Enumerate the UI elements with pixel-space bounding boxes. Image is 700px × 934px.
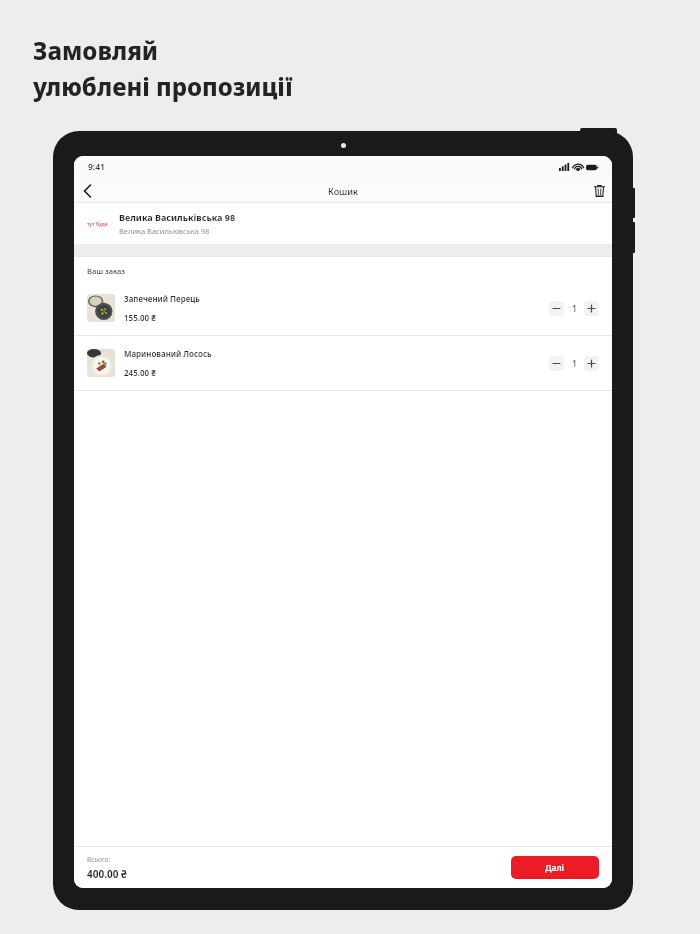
- staticText: Всього:: [87, 855, 111, 864]
- staticText: 9:41: [88, 161, 105, 173]
- button[interactable]: Increase quantity: [584, 356, 599, 371]
- staticText: Велика Васильківська 98: [119, 211, 236, 223]
- staticText: Велика Васильківська 98: [119, 226, 210, 236]
- staticText: Запечений Перець: [124, 293, 200, 304]
- button[interactable]: Decrease quantity: [549, 356, 564, 371]
- staticText: тут буде: [87, 220, 114, 227]
- staticText: 155.00 ₴: [124, 312, 156, 323]
- button[interactable]: Clear cart: [586, 178, 612, 203]
- button[interactable]: Далі: [511, 856, 599, 879]
- staticText: Ваш заказ: [87, 266, 125, 276]
- button[interactable]: тут буде: [74, 203, 612, 244]
- staticText: 1: [572, 303, 577, 314]
- staticText: 245.00 ₴: [124, 367, 156, 378]
- staticText: Мариновaний Лосось: [124, 348, 212, 359]
- staticText: улюблені пропозиції: [33, 70, 293, 103]
- button[interactable]: Decrease quantity: [549, 301, 564, 316]
- button[interactable]: Back: [74, 178, 100, 203]
- button[interactable]: Запечений Перець: [74, 281, 612, 335]
- staticText: 400.00 ₴: [87, 867, 127, 881]
- staticText: 1: [572, 358, 577, 369]
- staticText: Далі: [545, 862, 565, 874]
- staticText: Замовляй: [33, 34, 158, 67]
- button[interactable]: Increase quantity: [584, 301, 599, 316]
- staticText: Кошик: [328, 185, 358, 197]
- button[interactable]: Мариновaний Лосось: [74, 336, 612, 390]
